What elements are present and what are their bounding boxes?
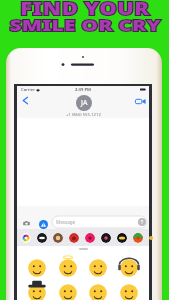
button[interactable]: App 7 [117, 233, 127, 243]
staticText: SMILE OR CRY [9, 14, 161, 37]
button[interactable]: Emoji 8 [119, 283, 139, 300]
button[interactable]: Message [52, 216, 147, 228]
button[interactable]: Emoji 1 [27, 258, 47, 278]
staticText: FIND YOUR [20, 0, 150, 19]
button[interactable]: App Store [39, 220, 48, 229]
button[interactable]: App 2 [37, 233, 47, 243]
button[interactable]: App 8 [133, 233, 143, 243]
button[interactable]: Send [138, 218, 146, 226]
staticText: SMILE OR CRY [9, 14, 161, 37]
button[interactable]: Emoji 4 [119, 258, 139, 278]
staticText: JA [81, 98, 88, 108]
button[interactable]: Emoji 7 [88, 283, 108, 300]
button[interactable]: App 4 [69, 233, 79, 243]
staticText: 2:39 PM [75, 87, 91, 93]
staticText: FIND YOUR [20, 0, 150, 19]
button[interactable]: Back [20, 95, 31, 106]
button[interactable]: App 1 [21, 233, 31, 243]
button[interactable]: Emoji 5 [27, 283, 47, 300]
button[interactable]: Video call [135, 96, 146, 107]
staticText: Message [56, 219, 76, 225]
button[interactable]: Emoji 6 [58, 283, 78, 300]
staticText: Carrier [21, 87, 35, 93]
button[interactable]: App 5 [85, 233, 95, 243]
button[interactable]: App 6 [101, 233, 111, 243]
button[interactable]: App 3 [53, 233, 63, 243]
button[interactable]: Emoji 3 [88, 258, 108, 278]
button[interactable]: Camera [23, 220, 30, 227]
staticText: +1 (866) 555-1212 [66, 112, 101, 118]
button[interactable]: Emoji 2 [58, 258, 78, 278]
button[interactable]: App 9 [149, 233, 153, 243]
